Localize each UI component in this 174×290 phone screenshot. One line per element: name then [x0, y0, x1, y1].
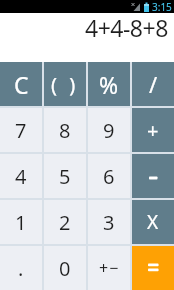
- staticText: ( ): [51, 71, 79, 98]
- button[interactable]: 7: [0, 108, 42, 152]
- button[interactable]: C: [0, 62, 42, 106]
- button[interactable]: 5: [44, 154, 86, 198]
- staticText: .: [18, 255, 24, 282]
- button[interactable]: %: [88, 62, 130, 106]
- button[interactable]: [132, 154, 174, 198]
- button[interactable]: +−: [88, 246, 130, 290]
- staticText: 6: [103, 163, 115, 190]
- button[interactable]: 8: [44, 108, 86, 152]
- staticText: 9: [103, 117, 115, 144]
- staticText: 3:15: [152, 0, 172, 13]
- staticText: 1: [15, 209, 27, 236]
- button[interactable]: [132, 246, 174, 290]
- button[interactable]: 3: [88, 200, 130, 244]
- button[interactable]: 0: [44, 246, 86, 290]
- button[interactable]: 1: [0, 200, 42, 244]
- button[interactable]: 4: [0, 154, 42, 198]
- staticText: 3: [103, 209, 115, 236]
- button[interactable]: ( ): [44, 62, 86, 106]
- staticText: 5: [59, 163, 71, 190]
- staticText: 4+4-8+8: [85, 12, 168, 43]
- button[interactable]: .: [0, 246, 42, 290]
- staticText: +: [147, 117, 159, 144]
- button[interactable]: X: [132, 200, 174, 244]
- staticText: X: [147, 209, 159, 235]
- staticText: %: [99, 69, 119, 100]
- button[interactable]: 2: [44, 200, 86, 244]
- staticText: 8: [59, 117, 71, 144]
- button[interactable]: 6: [88, 154, 130, 198]
- staticText: +−: [99, 257, 120, 279]
- staticText: 0: [59, 255, 71, 282]
- button[interactable]: 9: [88, 108, 130, 152]
- staticText: 7: [15, 117, 27, 144]
- staticText: 4: [15, 163, 27, 190]
- button[interactable]: /: [132, 62, 174, 106]
- button[interactable]: +: [132, 108, 174, 152]
- staticText: 2: [59, 209, 71, 236]
- staticText: C: [14, 69, 29, 100]
- staticText: /: [149, 69, 158, 99]
